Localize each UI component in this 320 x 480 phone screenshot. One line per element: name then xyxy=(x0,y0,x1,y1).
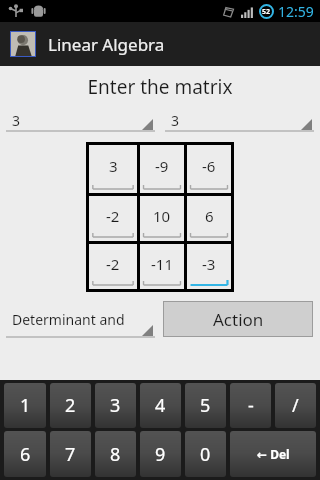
staticText: 7 xyxy=(65,442,76,467)
staticText: Action xyxy=(213,308,264,331)
staticText: -2 xyxy=(106,206,120,226)
staticText: 2 xyxy=(65,393,76,418)
button[interactable]: 4 xyxy=(140,383,181,428)
staticText: / xyxy=(292,393,299,418)
staticText: -6 xyxy=(202,156,216,176)
button[interactable]: Determinant and xyxy=(6,300,155,338)
staticText: 5 xyxy=(200,393,211,418)
staticText: -3 xyxy=(202,254,216,274)
button[interactable]: Linear Algebra xyxy=(0,22,320,66)
staticText: -11 xyxy=(151,254,173,274)
button[interactable]: ← Del xyxy=(230,431,316,477)
button[interactable]: -6 xyxy=(187,145,231,193)
button[interactable]: 10 xyxy=(140,196,184,241)
staticText: 3 xyxy=(171,111,180,130)
button[interactable]: 8 xyxy=(95,431,136,477)
staticText: 6 xyxy=(205,206,214,226)
staticText: -2 xyxy=(106,254,120,274)
staticText: Determinant and xyxy=(12,310,125,329)
button[interactable]: 7 xyxy=(50,431,91,477)
button[interactable]: 9 xyxy=(140,431,181,477)
staticText: 1 xyxy=(20,393,31,418)
button[interactable]: 6 xyxy=(187,196,231,241)
button[interactable]: 3 xyxy=(165,108,314,132)
staticText: 3 xyxy=(12,111,21,130)
staticText: 0 xyxy=(200,442,211,467)
button[interactable]: 5 xyxy=(185,383,226,428)
staticText: 10 xyxy=(153,206,171,226)
staticText: 3 xyxy=(110,393,121,418)
staticText: ← Del xyxy=(257,446,290,462)
button[interactable]: 6 xyxy=(4,431,46,477)
button[interactable]: 0 xyxy=(185,431,226,477)
staticText: 6 xyxy=(20,442,31,467)
staticText: 52 xyxy=(262,7,271,17)
button[interactable]: -2 xyxy=(89,244,137,289)
button[interactable]: Action xyxy=(163,301,313,337)
staticText: Linear Algebra xyxy=(48,33,165,56)
staticText: 4 xyxy=(155,393,166,418)
staticText: 12:59 xyxy=(278,2,314,21)
staticText: -9 xyxy=(155,156,169,176)
button[interactable]: -9 xyxy=(140,145,184,193)
button[interactable]: 1 xyxy=(4,383,46,428)
staticText: 9 xyxy=(155,442,166,467)
button[interactable]: 3 xyxy=(6,108,155,132)
button[interactable]: 2 xyxy=(50,383,91,428)
button[interactable]: 3 xyxy=(89,145,137,193)
button[interactable]: -3 xyxy=(187,244,231,289)
button[interactable]: -2 xyxy=(89,196,137,241)
button[interactable]: - xyxy=(230,383,271,428)
staticText: 8 xyxy=(110,442,121,467)
staticText: - xyxy=(248,393,254,418)
staticText: Enter the matrix xyxy=(0,74,320,100)
button[interactable]: -11 xyxy=(140,244,184,289)
staticText: 3 xyxy=(109,156,118,176)
button[interactable]: / xyxy=(275,383,316,428)
button[interactable]: 3 xyxy=(95,383,136,428)
